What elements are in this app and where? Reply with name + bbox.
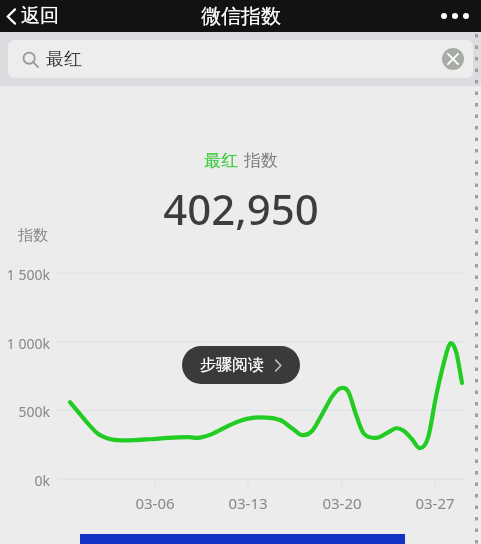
button[interactable]: 返回 [0,2,69,30]
staticText: 03-06 [125,493,185,513]
staticText: 指数 [18,226,48,245]
button[interactable]: Clear search [440,46,466,72]
button[interactable]: More options [429,7,481,25]
staticText: 402,950 [163,180,319,237]
staticText: 步骤阅读 [200,355,264,375]
staticText: 最红 [46,48,82,71]
staticText: 0k [2,471,50,490]
staticText: 返回 [21,4,59,28]
staticText: 03-13 [218,493,278,513]
staticText: 500k [2,402,50,421]
staticText: 最红 [204,150,238,171]
staticText: 微信指数 [201,4,281,29]
button[interactable]: 最红 [8,40,473,78]
staticText: 03-27 [405,493,465,513]
button[interactable]: 步骤阅读 [182,346,300,384]
staticText: 1 500k [2,265,50,284]
staticText: 1 000k [2,334,50,353]
staticText: 指数 [244,150,278,171]
staticText: 03-20 [312,493,372,513]
